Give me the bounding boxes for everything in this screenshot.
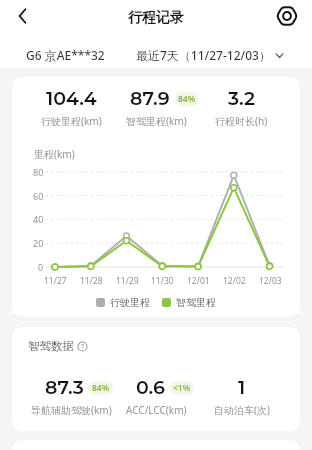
button[interactable]: 1 [199, 376, 284, 417]
staticText: 3.2 [228, 87, 255, 110]
button[interactable]: 87.3 [28, 376, 114, 417]
staticText: 最近7天（11/27-12/03） [136, 47, 271, 63]
staticText: <1% [173, 382, 191, 394]
staticText: 导航辅助驾驶(km) [31, 403, 112, 417]
staticText: 11/28 [80, 275, 103, 287]
staticText: 12/02 [223, 275, 246, 287]
staticText: ACC/LCC(km) [126, 403, 187, 417]
staticText: 行程时长(h) [215, 114, 268, 128]
staticText: 80 [33, 166, 44, 178]
staticText: ? [81, 342, 85, 352]
staticText: 60 [33, 190, 44, 202]
staticText: 智驾数据 [28, 339, 74, 353]
staticText: 1 [238, 376, 246, 399]
staticText: 40 [33, 213, 44, 225]
button[interactable]: 3.2 [199, 87, 284, 128]
staticText: 12/01 [187, 275, 210, 287]
staticText: 里程(km) [34, 147, 75, 161]
staticText: 智驾里程 [176, 296, 216, 309]
button[interactable] [11, 4, 35, 28]
staticText: 84% [178, 93, 196, 105]
staticText: 行程记录 [128, 9, 184, 27]
staticText: 87.3 [45, 376, 84, 399]
button[interactable]: 104.4 [28, 87, 114, 128]
staticText: 0.6 [136, 376, 165, 399]
button[interactable] [275, 4, 299, 28]
staticText: 104.4 [46, 87, 97, 110]
button[interactable]: 0.6 [114, 376, 199, 417]
staticText: 自动泊车(次) [214, 403, 270, 417]
staticText: 0 [38, 261, 44, 273]
staticText: 84% [92, 382, 110, 394]
staticText: 12/03 [259, 275, 282, 287]
staticText: 行驶里程 [110, 296, 150, 309]
button[interactable]: G6 京AE***32 [26, 47, 105, 63]
staticText: 智驾里程(km) [126, 114, 187, 128]
staticText: 11/29 [116, 275, 139, 287]
button[interactable]: 87.9 [114, 87, 199, 128]
staticText: 行驶里程(km) [41, 114, 102, 128]
button[interactable]: 智驾数据 [28, 339, 88, 353]
staticText: 87.9 [130, 87, 170, 110]
button[interactable]: 最近7天（11/27-12/03） [136, 47, 284, 63]
staticText: 11/30 [151, 275, 174, 287]
staticText: 20 [33, 237, 44, 249]
staticText: 11/27 [44, 275, 67, 287]
